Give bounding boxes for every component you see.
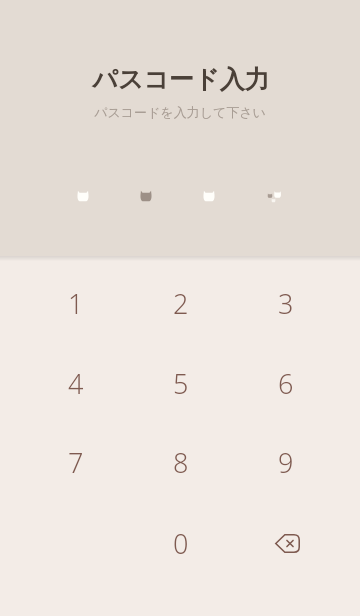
- staticText: 5: [173, 365, 189, 402]
- button[interactable]: Delete: [245, 513, 329, 573]
- staticText: 0: [173, 525, 189, 562]
- staticText: 9: [278, 444, 294, 481]
- staticText: 7: [68, 444, 84, 481]
- button[interactable]: 0: [139, 513, 223, 573]
- staticText: 6: [278, 365, 294, 402]
- button[interactable]: 6: [244, 353, 328, 413]
- button[interactable]: 4: [34, 353, 118, 413]
- button[interactable]: 2: [139, 273, 223, 333]
- staticText: 8: [173, 444, 189, 481]
- staticText: 1: [68, 285, 84, 322]
- staticText: 4: [68, 365, 84, 402]
- button[interactable]: 9: [244, 432, 328, 492]
- staticText: パスコードを入力して下さい: [94, 104, 266, 120]
- button[interactable]: 8: [139, 432, 223, 492]
- staticText: 3: [278, 285, 294, 322]
- button[interactable]: 5: [139, 353, 223, 413]
- button[interactable]: 7: [34, 432, 118, 492]
- staticText: パスコード入力: [92, 64, 270, 95]
- button[interactable]: 3: [244, 273, 328, 333]
- button[interactable]: 1: [34, 273, 118, 333]
- staticText: 2: [173, 285, 189, 322]
